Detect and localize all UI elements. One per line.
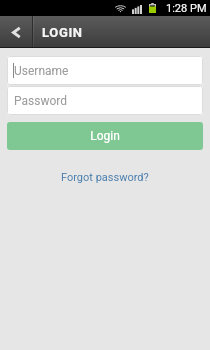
staticText: Login bbox=[90, 129, 120, 143]
button[interactable]: Login bbox=[7, 122, 203, 150]
button[interactable]: Username bbox=[7, 56, 203, 85]
button[interactable]: Password bbox=[7, 86, 203, 115]
staticText: 1:28 PM bbox=[166, 2, 207, 15]
button[interactable]: Forgot password? bbox=[57, 169, 153, 186]
staticText: Password bbox=[14, 94, 68, 108]
staticText: LOGIN bbox=[42, 25, 83, 40]
button[interactable]: Back bbox=[0, 16, 32, 48]
staticText: Username bbox=[14, 64, 69, 78]
